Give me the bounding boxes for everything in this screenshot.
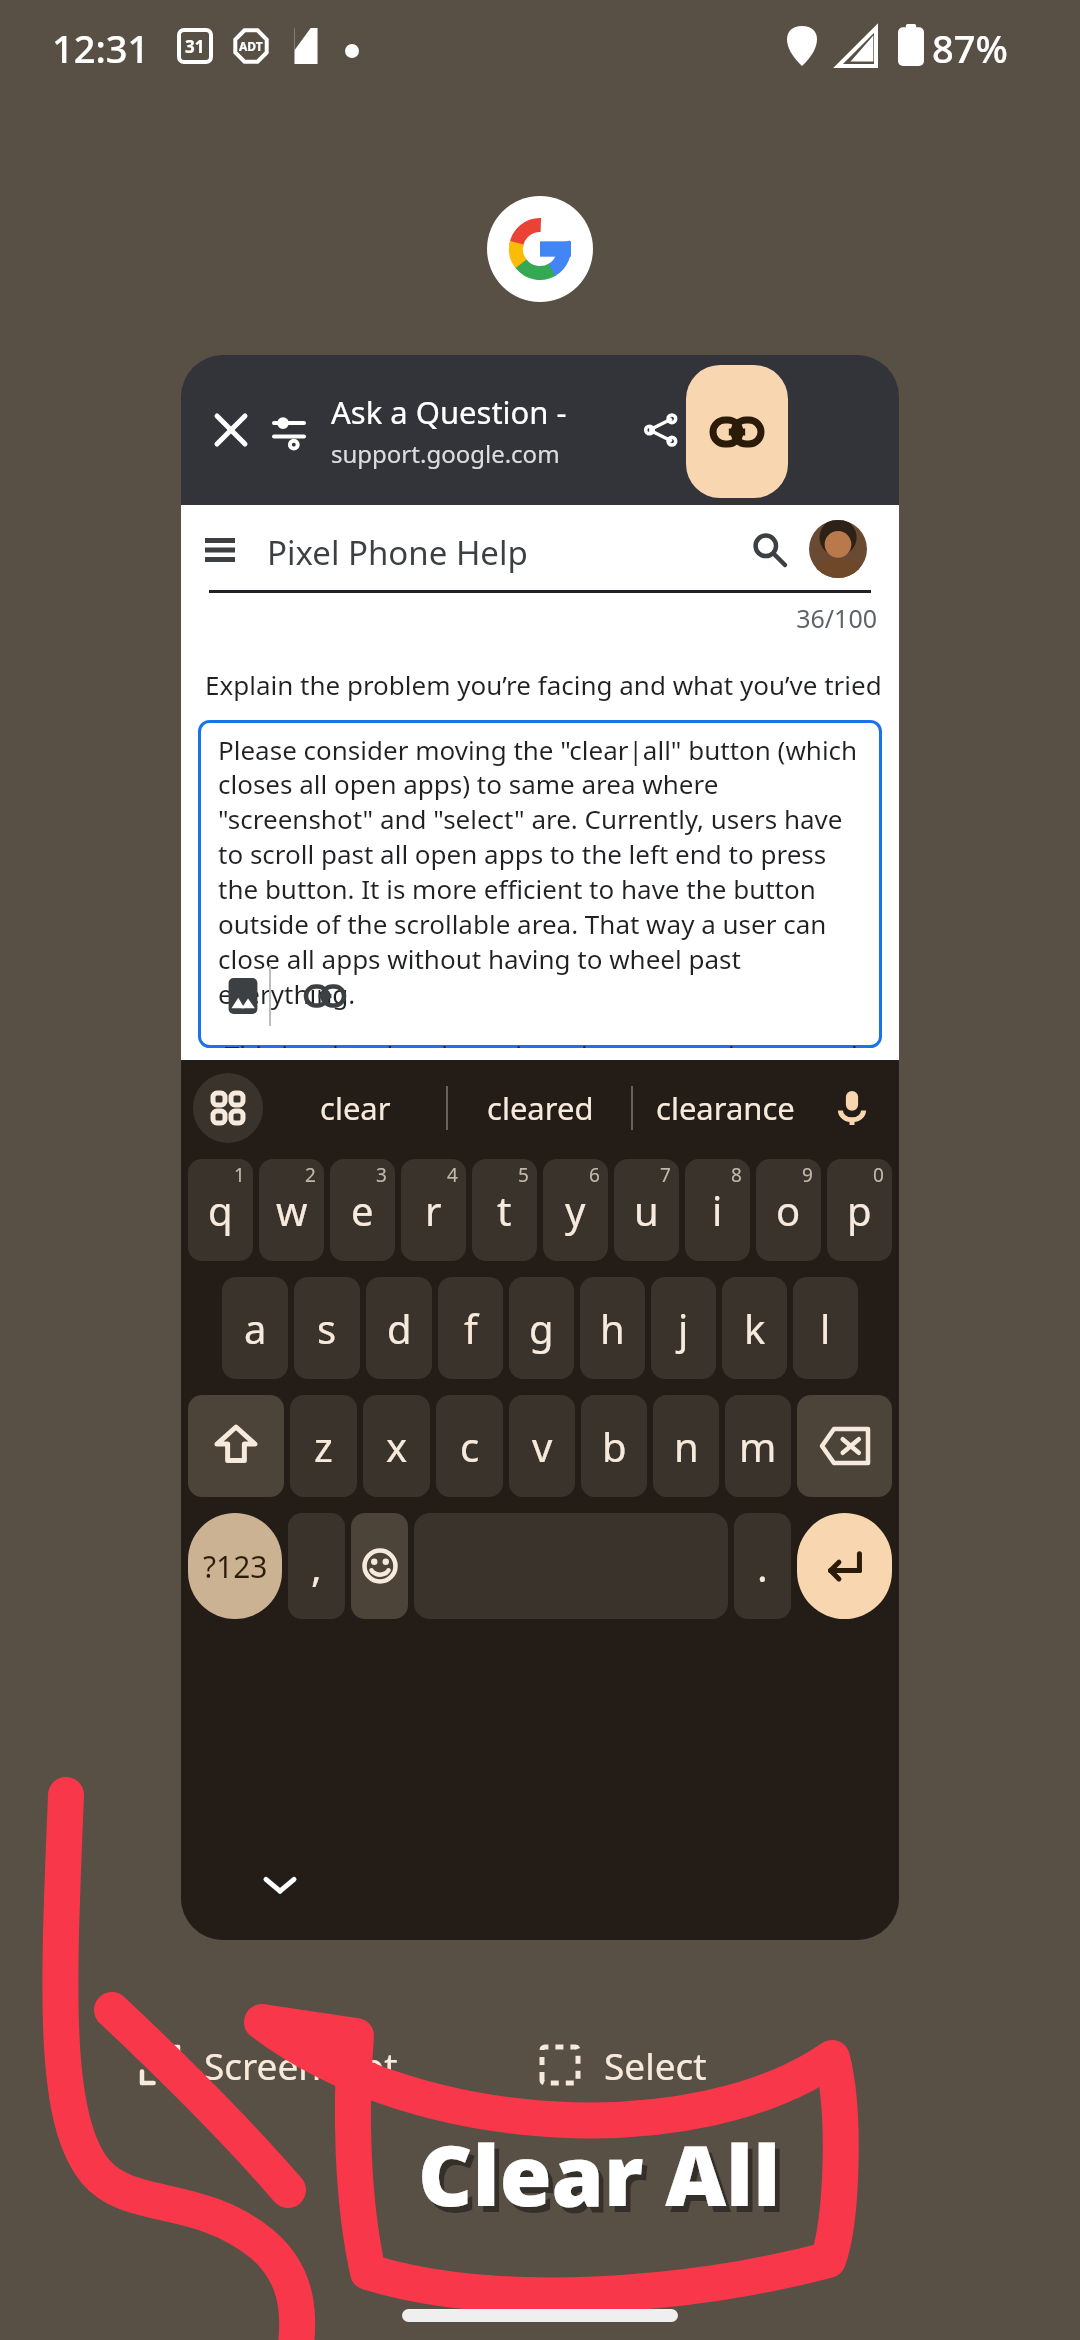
staticText: z [314, 1419, 333, 1473]
button[interactable]: Copy link [686, 365, 788, 498]
staticText: l [820, 1301, 831, 1355]
button[interactable]: t [472, 1159, 537, 1261]
button[interactable]: ?123 [188, 1513, 282, 1619]
button[interactable]: z [290, 1395, 357, 1497]
staticText: Screenshot [204, 2040, 398, 2090]
button[interactable]: Add link [298, 969, 352, 1023]
button[interactable]: x [363, 1395, 430, 1497]
button[interactable]: Search [743, 523, 795, 575]
button[interactable]: . [734, 1513, 791, 1619]
staticText: k [744, 1301, 766, 1355]
button[interactable]: s [294, 1277, 360, 1379]
button[interactable]: cleared [449, 1060, 632, 1156]
button[interactable]: Select [540, 2040, 1080, 2090]
staticText: This is related to the action where you … [218, 1037, 868, 1048]
staticText: v [532, 1419, 553, 1473]
staticText: clearance [656, 1087, 795, 1129]
button[interactable]: Enter [797, 1513, 892, 1619]
staticText: Select [604, 2040, 707, 2090]
button[interactable]: Shift [188, 1395, 284, 1497]
button[interactable]: Emoji [351, 1513, 408, 1619]
button[interactable]: i [685, 1159, 750, 1261]
staticText: t [497, 1183, 512, 1237]
staticText: i [712, 1183, 723, 1237]
staticText: 9 [802, 1162, 813, 1188]
staticText: 8 [731, 1162, 742, 1188]
button[interactable]: Add image [216, 969, 270, 1023]
staticText: y [565, 1183, 586, 1237]
staticText: 6 [589, 1162, 600, 1188]
button[interactable]: Google [487, 196, 593, 302]
staticText: 1 [234, 1162, 245, 1188]
button[interactable]: c [436, 1395, 503, 1497]
staticText: o [776, 1183, 801, 1237]
staticText: f [464, 1301, 478, 1355]
button[interactable]: y [543, 1159, 608, 1261]
staticText: d [387, 1301, 412, 1355]
staticText: w [276, 1183, 308, 1237]
button[interactable]: p [827, 1159, 892, 1261]
button[interactable]: u [614, 1159, 679, 1261]
staticText: u [634, 1183, 659, 1237]
button[interactable]: , [288, 1513, 345, 1619]
button[interactable]: f [438, 1277, 503, 1379]
button[interactable]: w [259, 1159, 324, 1261]
staticText: e [351, 1183, 374, 1237]
button[interactable]: Toolbar [193, 1073, 263, 1143]
staticText: c [460, 1419, 480, 1473]
staticText: Ask a Question - Goo… [331, 391, 591, 433]
staticText: s [317, 1301, 337, 1355]
button[interactable]: clear [263, 1060, 447, 1156]
button[interactable]: Account [809, 520, 867, 578]
button[interactable]: Page info [259, 400, 319, 460]
button[interactable]: Please consider moving the "clear|all" b… [198, 720, 882, 1048]
button[interactable]: e [330, 1159, 395, 1261]
button[interactable]: g [509, 1277, 574, 1379]
staticText: support.google.com [331, 437, 560, 470]
staticText: Please consider moving the "clear|all" b… [218, 732, 868, 1012]
staticText: n [674, 1419, 699, 1473]
button[interactable]: Voice input [817, 1073, 887, 1143]
button[interactable]: Menu [195, 525, 245, 575]
button[interactable]: a [222, 1277, 288, 1379]
staticText: b [602, 1419, 627, 1473]
staticText: j [678, 1301, 689, 1355]
staticText: h [600, 1301, 625, 1355]
staticText: 7 [660, 1162, 671, 1188]
staticText: 87% [932, 22, 1008, 74]
staticText: clear [320, 1087, 391, 1129]
button[interactable]: l [793, 1277, 858, 1379]
button[interactable]: b [581, 1395, 647, 1497]
button[interactable]: h [580, 1277, 645, 1379]
button[interactable]: Share [631, 400, 691, 460]
staticText: ADT [239, 38, 263, 54]
button[interactable]: d [366, 1277, 432, 1379]
button[interactable]: j [651, 1277, 716, 1379]
button[interactable]: Backspace [797, 1395, 892, 1497]
button[interactable]: Screenshot [140, 2040, 540, 2090]
button[interactable]: v [509, 1395, 575, 1497]
button[interactable]: o [756, 1159, 821, 1261]
staticText: x [386, 1419, 408, 1473]
button[interactable]: n [653, 1395, 719, 1497]
staticText: p [847, 1183, 872, 1237]
staticText: 4 [447, 1162, 458, 1188]
button[interactable]: r [401, 1159, 466, 1261]
staticText: 2 [305, 1162, 316, 1188]
staticText: 5 [518, 1162, 529, 1188]
button[interactable]: clearance [634, 1060, 817, 1156]
staticText: Clear All [418, 2116, 781, 2230]
staticText: r [425, 1183, 442, 1237]
button[interactable]: Hide keyboard [255, 1860, 305, 1910]
staticText: 3 [376, 1162, 387, 1188]
button[interactable]: Close [201, 400, 261, 460]
button[interactable]: m [725, 1395, 791, 1497]
button[interactable]: k [722, 1277, 787, 1379]
staticText: , [311, 1539, 322, 1593]
button[interactable]: q [188, 1159, 253, 1261]
staticText: . [757, 1539, 768, 1593]
staticText: a [244, 1301, 267, 1355]
staticText: g [529, 1301, 554, 1355]
staticText: 0 [873, 1162, 884, 1188]
